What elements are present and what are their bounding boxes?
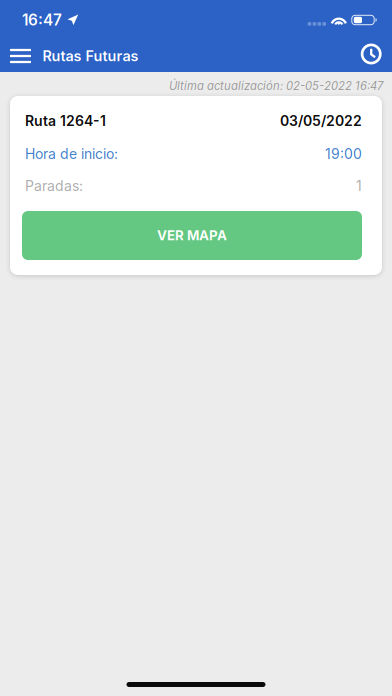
button[interactable]: Historial <box>361 40 392 72</box>
staticText: Última actualización: 02-05-2022 16:47 <box>169 79 383 93</box>
staticText: Ruta 1264-1 <box>25 112 106 129</box>
staticText: Rutas Futuras <box>42 47 138 65</box>
staticText: VER MAPA <box>157 227 227 243</box>
staticText: Paradas: <box>25 177 83 194</box>
button[interactable]: VER MAPA <box>22 211 362 260</box>
button[interactable]: Menu <box>0 40 42 72</box>
staticText: Hora de inicio: <box>25 145 118 162</box>
staticText: 03/05/2022 <box>280 112 362 129</box>
staticText: 19:00 <box>325 145 362 162</box>
staticText: 1 <box>356 177 362 194</box>
staticText: 16:47 <box>22 11 62 29</box>
